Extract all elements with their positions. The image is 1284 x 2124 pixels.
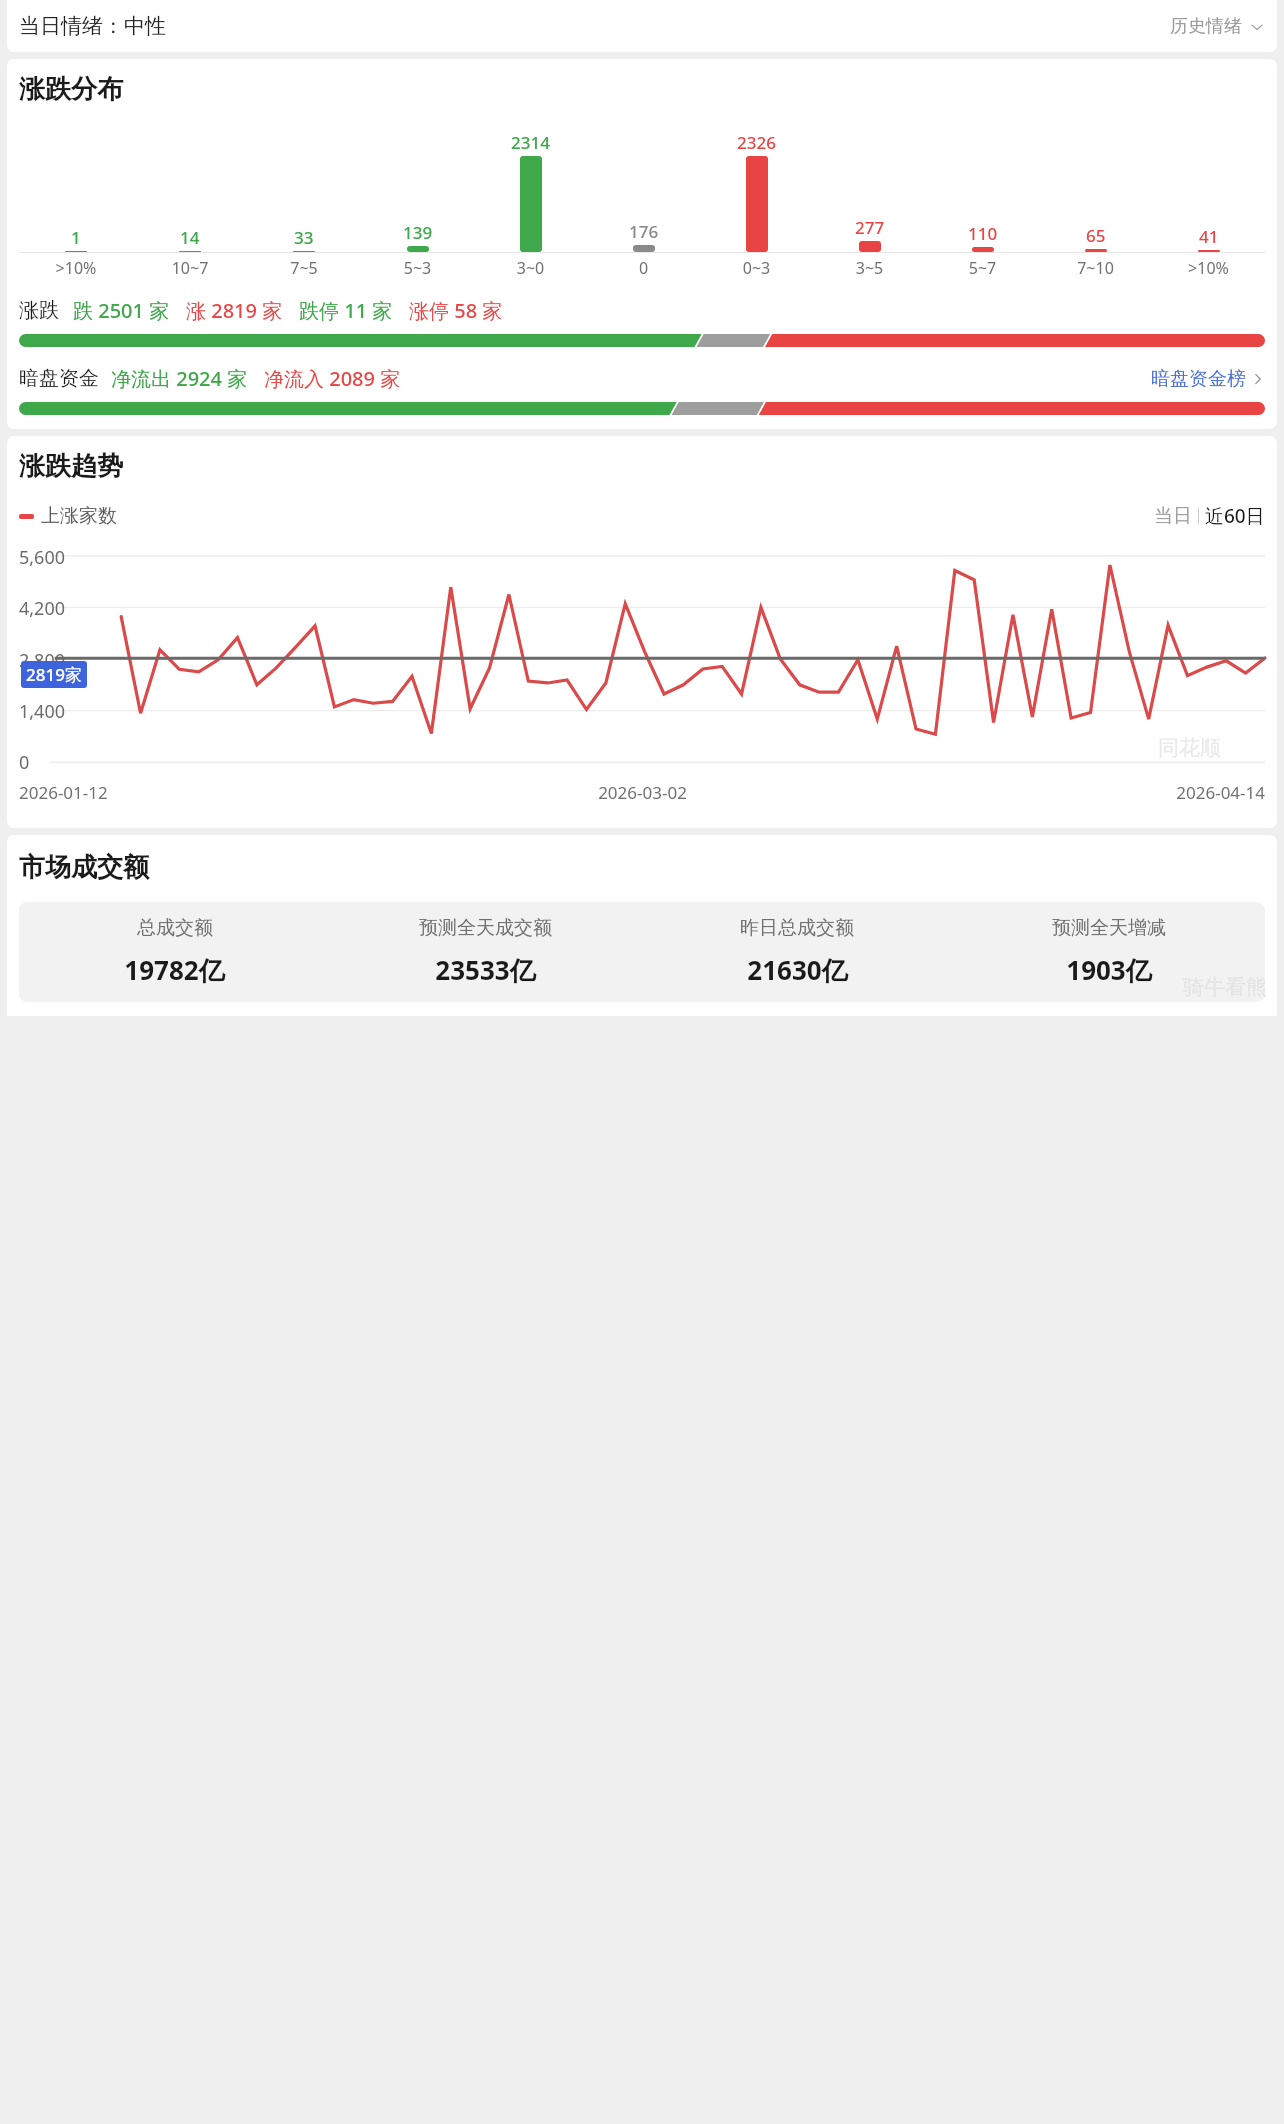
staticText: 14 (180, 226, 200, 249)
staticText: 暗盘资金榜 (1151, 367, 1246, 391)
staticText: 2026-01-12 (19, 781, 435, 804)
staticText: 110 (968, 222, 998, 245)
staticText: 1 (71, 226, 81, 249)
staticText: 涨跌 (19, 298, 59, 323)
staticText: 5~3 (361, 257, 474, 279)
other: 展开历史情绪 (1249, 19, 1265, 35)
staticText: 10~7 (133, 257, 247, 279)
button[interactable]: 当日 (1154, 504, 1192, 528)
staticText: 5,600 (19, 545, 66, 570)
button[interactable]: 历史情绪 (1170, 15, 1265, 38)
staticText: 19782亿 (124, 952, 225, 988)
staticText: 3~5 (813, 257, 926, 279)
staticText: 跌停 11 家 (299, 297, 393, 324)
staticText: 41 (1199, 225, 1219, 248)
staticText: >10% (1152, 257, 1265, 279)
button[interactable]: 近60日 (1205, 503, 1265, 529)
staticText: 2,800 (19, 648, 66, 673)
other: 暗盘资金榜 (1251, 372, 1265, 386)
staticText: 139 (403, 221, 433, 244)
staticText: 预测全天成交额 (419, 916, 552, 940)
staticText: 预测全天增减 (1052, 916, 1166, 940)
staticText: 2026-04-14 (850, 781, 1265, 804)
staticText: 277 (855, 216, 885, 239)
staticText: 同花顺 (1158, 735, 1221, 761)
staticText: 涨停 58 家 (409, 297, 503, 324)
staticText: 176 (629, 220, 659, 243)
staticText: 7~10 (1039, 257, 1152, 279)
staticText: 2819家 (26, 663, 82, 686)
staticText: 总成交额 (137, 916, 213, 940)
staticText: 0 (587, 257, 700, 279)
staticText: 涨跌分布 (19, 73, 123, 106)
staticText: 跌 2501 家 (73, 297, 170, 324)
staticText: 历史情绪 (1170, 15, 1242, 38)
staticText: 5~7 (926, 257, 1039, 279)
staticText: 4,200 (19, 596, 66, 621)
staticText: 净流入 2089 家 (264, 365, 401, 392)
staticText: 33 (294, 226, 314, 249)
staticText: 3~0 (474, 257, 587, 279)
staticText: 骑牛看熊 (1183, 974, 1267, 1000)
staticText: 昨日总成交额 (740, 916, 854, 940)
staticText: >10% (19, 257, 133, 279)
staticText: 2026-03-02 (435, 781, 850, 804)
staticText: 净流出 2924 家 (111, 365, 248, 392)
staticText: 涨跌趋势 (19, 450, 123, 483)
staticText: 涨 2819 家 (186, 297, 283, 324)
staticText: 7~5 (247, 257, 361, 279)
staticText: 65 (1086, 224, 1106, 247)
staticText: 上涨家数 (41, 504, 117, 528)
staticText: 21630亿 (747, 952, 848, 988)
staticText: 0 (19, 750, 30, 775)
staticText: 2326 (737, 131, 776, 154)
staticText: 暗盘资金 (19, 366, 99, 391)
staticText: 2314 (511, 131, 550, 154)
staticText: 23533亿 (435, 952, 536, 988)
staticText: 当日情绪：中性 (19, 13, 166, 39)
button[interactable]: 暗盘资金榜 (1151, 367, 1265, 391)
staticText: 市场成交额 (19, 851, 149, 884)
staticText: 1903亿 (1066, 952, 1152, 988)
staticText: 1,400 (19, 699, 66, 724)
staticText: 0~3 (700, 257, 813, 279)
